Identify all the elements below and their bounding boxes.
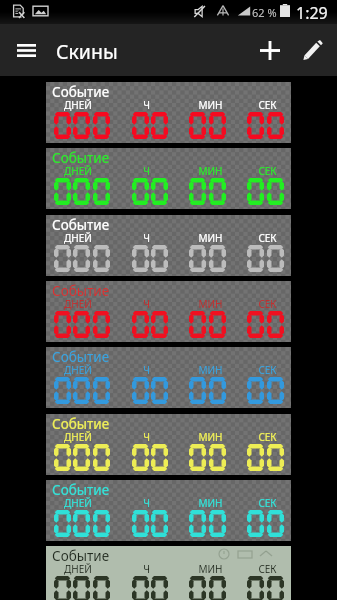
staticText: МИН xyxy=(198,164,223,178)
staticText: ДНЕЙ xyxy=(64,430,92,444)
staticText: Скины xyxy=(56,38,118,65)
staticText: СЕК xyxy=(258,98,277,112)
staticText: МИН xyxy=(198,430,223,444)
staticText: Ч xyxy=(143,430,150,444)
staticText: СЕК xyxy=(258,496,277,510)
staticText: Событие xyxy=(52,149,110,167)
staticText: СЕК xyxy=(258,363,277,377)
staticText: 1:29 xyxy=(296,2,328,24)
staticText: ДНЕЙ xyxy=(64,98,92,112)
staticText: Ч xyxy=(143,363,150,377)
button[interactable]: Событие xyxy=(46,82,291,143)
staticText: СЕК xyxy=(258,164,277,178)
staticText: Событие xyxy=(52,83,110,101)
staticText: ДНЕЙ xyxy=(64,164,92,178)
staticText: МИН xyxy=(198,496,223,510)
staticText: Событие xyxy=(52,481,110,499)
staticText: ДНЕЙ xyxy=(64,297,92,311)
button[interactable]: Open navigation menu xyxy=(2,24,50,76)
staticText: Ч xyxy=(143,562,150,576)
staticText: Событие xyxy=(52,348,110,366)
button[interactable]: Событие xyxy=(46,546,291,600)
button[interactable]: Событие xyxy=(46,347,291,408)
button[interactable]: Событие xyxy=(46,281,291,342)
staticText: МИН xyxy=(198,363,223,377)
staticText: СЕК xyxy=(258,562,277,576)
staticText: Ч xyxy=(143,164,150,178)
staticText: МИН xyxy=(198,98,223,112)
staticText: Ч xyxy=(143,231,150,245)
staticText: ДНЕЙ xyxy=(64,496,92,510)
staticText: Событие xyxy=(52,547,110,565)
staticText: СЕК xyxy=(258,430,277,444)
staticText: СЕК xyxy=(258,297,277,311)
staticText: МИН xyxy=(198,562,223,576)
staticText: Ч xyxy=(143,297,150,311)
staticText: Ч xyxy=(143,496,150,510)
button[interactable]: Событие xyxy=(46,148,291,209)
staticText: ДНЕЙ xyxy=(64,562,92,576)
staticText: СЕК xyxy=(258,231,277,245)
staticText: Событие xyxy=(52,415,110,433)
button[interactable]: Edit skins xyxy=(290,24,336,76)
button[interactable]: Событие xyxy=(46,215,291,276)
button[interactable]: Событие xyxy=(46,480,291,541)
staticText: Событие xyxy=(52,216,110,234)
staticText: МИН xyxy=(198,297,223,311)
button[interactable]: Add skin xyxy=(246,24,294,76)
staticText: ДНЕЙ xyxy=(64,231,92,245)
staticText: Ч xyxy=(143,98,150,112)
staticText: 62 % xyxy=(252,5,277,20)
staticText: Событие xyxy=(52,282,110,300)
button[interactable]: Событие xyxy=(46,414,291,475)
staticText: ДНЕЙ xyxy=(64,363,92,377)
staticText: МИН xyxy=(198,231,223,245)
